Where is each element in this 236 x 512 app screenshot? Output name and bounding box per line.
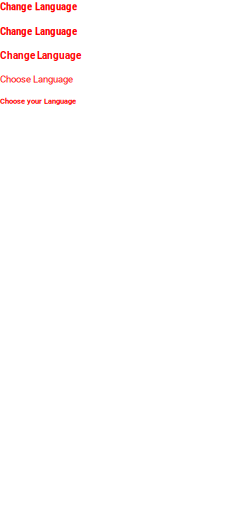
staticText: Choose Language	[0, 73, 73, 85]
staticText: Change Language	[0, 50, 81, 61]
staticText: Change Language	[0, 25, 77, 38]
staticText: Change Language	[0, 0, 77, 13]
staticText: Choose your Language	[0, 97, 76, 106]
